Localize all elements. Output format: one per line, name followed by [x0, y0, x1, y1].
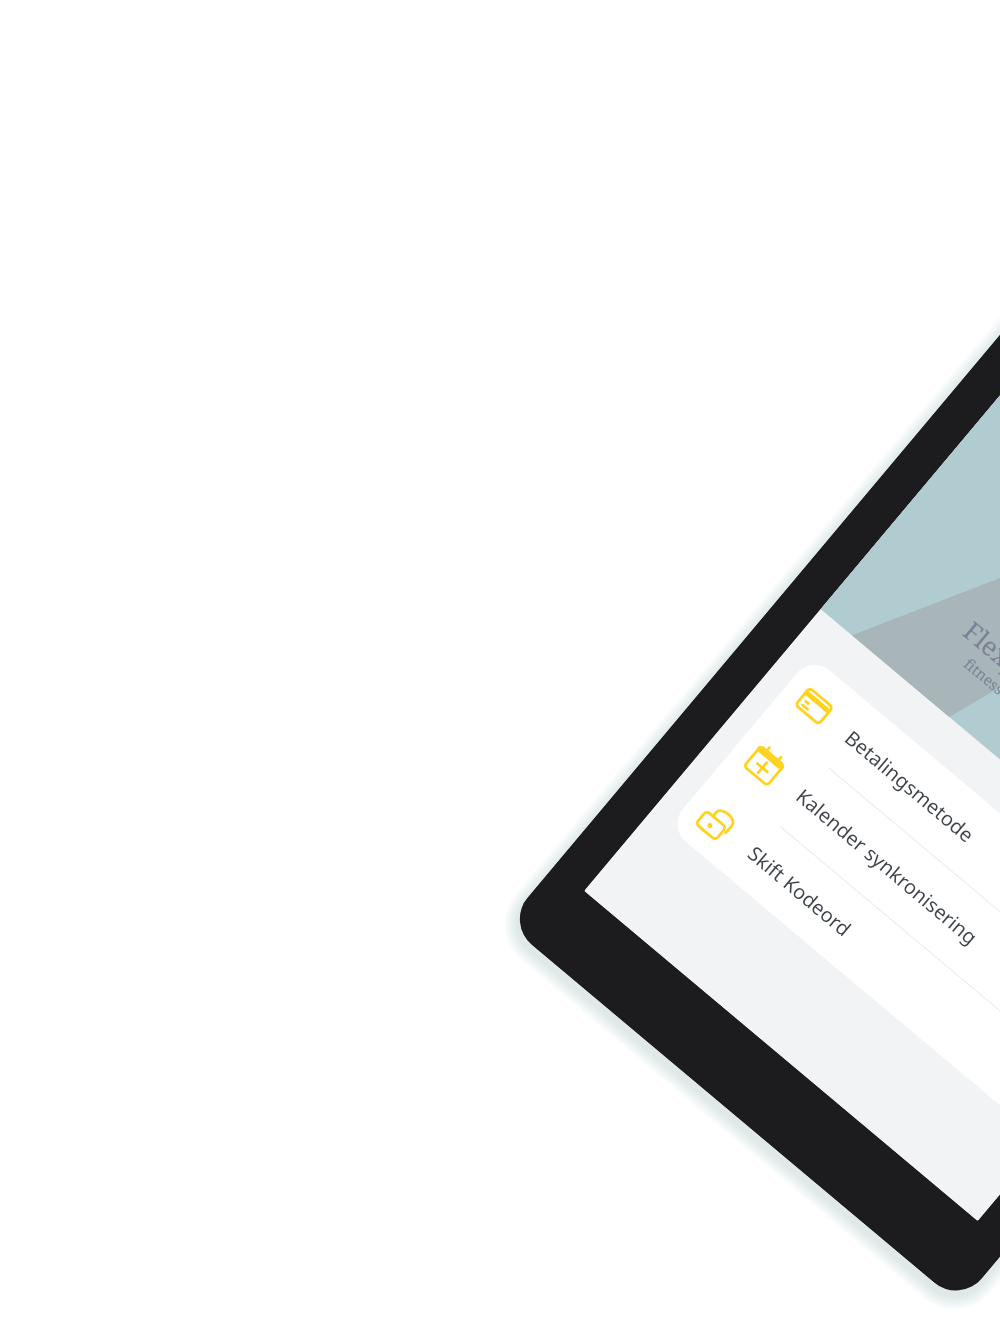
staticText: Flexy — [957, 613, 1000, 683]
button[interactable]: Change password — [668, 772, 1000, 1128]
staticText: Kalender synkronisering — [791, 783, 983, 950]
other: Change password — [694, 798, 740, 845]
staticText: fitness — [960, 653, 1000, 699]
other: Calendar sync — [742, 741, 788, 788]
button[interactable]: Payment method — [764, 655, 1000, 1013]
button[interactable]: Calendar sync — [715, 713, 1000, 1072]
staticText: Skift Kodeord — [742, 840, 857, 942]
other: Payment method — [791, 683, 837, 729]
staticText: Betalingsmetode — [839, 724, 980, 849]
